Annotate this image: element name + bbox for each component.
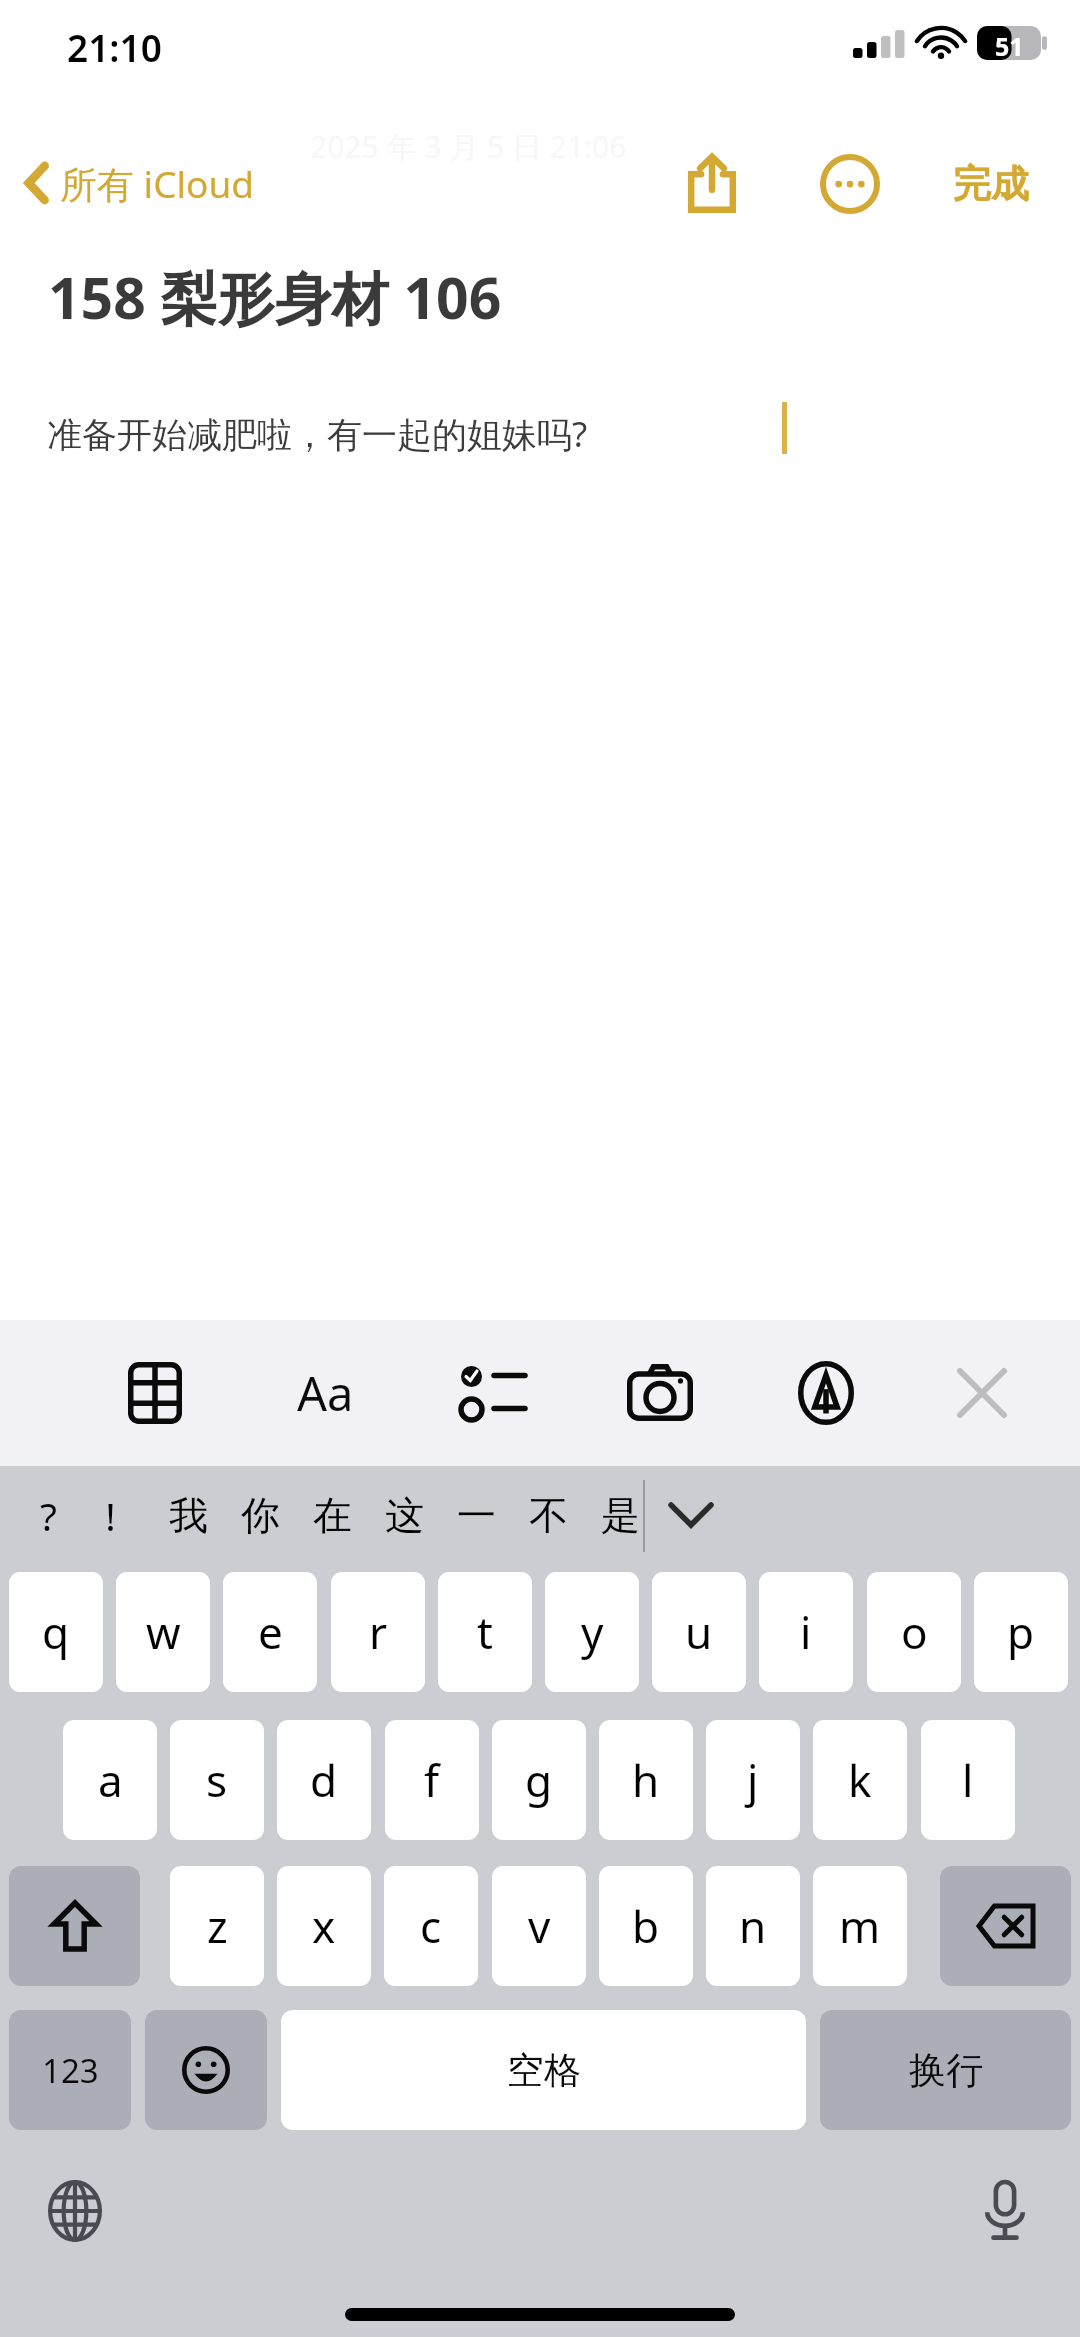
button[interactable]: b [599,1866,693,1986]
staticText: o [901,1602,928,1662]
button[interactable]: Shift [9,1866,140,1986]
button[interactable]: l [921,1720,1015,1840]
button[interactable]: v [492,1866,586,1986]
button[interactable]: d [277,1720,371,1840]
button[interactable]: u [652,1572,746,1692]
staticText: i [800,1602,812,1662]
button[interactable]: 所有 iCloud [18,140,263,226]
button[interactable]: Dictate [950,2156,1060,2266]
staticText: 准备开始减肥啦，有一起的姐妹吗? [47,410,588,458]
button[interactable]: Format text [265,1340,385,1446]
staticText: g [525,1750,553,1810]
staticText: 一 [457,1491,496,1540]
button[interactable]: y [545,1572,639,1692]
staticText: k [848,1750,872,1810]
staticText: 不 [529,1491,568,1540]
staticText: ? [40,1489,57,1542]
staticText: d [310,1750,338,1810]
button[interactable]: Camera [600,1340,720,1446]
staticText: r [369,1602,388,1662]
button[interactable]: Checklist [432,1340,552,1446]
button[interactable]: t [438,1572,532,1692]
staticText: f [424,1750,440,1810]
button[interactable]: Expand candidates [636,1466,746,1564]
staticText: ! [105,1489,116,1542]
button[interactable]: m [813,1866,907,1986]
staticText: 158 梨形身材 106 [48,258,502,336]
staticText: 这 [385,1491,424,1540]
staticText: j [747,1750,759,1810]
staticText: y [581,1602,604,1662]
staticText: h [632,1750,660,1810]
button[interactable]: 是 [584,1466,656,1564]
staticText: 空格 [507,2047,581,2094]
button[interactable]: 我 [152,1466,224,1564]
staticText: 123 [42,2048,99,2093]
staticText: l [962,1750,974,1810]
button[interactable]: Emoji [145,2010,267,2130]
staticText: m [839,1896,881,1956]
button[interactable]: i [759,1572,853,1692]
button[interactable]: r [331,1572,425,1692]
button[interactable]: 一 [440,1466,512,1564]
staticText: Aa [297,1361,354,1425]
button[interactable]: 不 [512,1466,584,1564]
button[interactable]: z [170,1866,264,1986]
button[interactable]: 这 [368,1466,440,1564]
staticText: t [477,1602,493,1662]
button[interactable]: q [9,1572,103,1692]
button[interactable]: 123 [9,2010,131,2130]
staticText: s [206,1750,228,1810]
button[interactable]: 完成 [924,142,1058,226]
button[interactable]: k [813,1720,907,1840]
button[interactable]: More options [800,142,900,226]
staticText: 我 [169,1491,208,1540]
button[interactable]: f [385,1720,479,1840]
staticText: 完成 [953,160,1029,208]
button[interactable]: o [867,1572,961,1692]
button[interactable]: s [170,1720,264,1840]
button[interactable]: Backspace [940,1866,1071,1986]
button[interactable]: Share [662,142,762,226]
button[interactable]: w [116,1572,210,1692]
button[interactable]: c [384,1866,478,1986]
staticText: 在 [313,1491,352,1540]
button[interactable]: e [223,1572,317,1692]
button[interactable]: ! [74,1466,146,1564]
staticText: e [258,1602,283,1662]
staticText: 换行 [909,2047,983,2094]
button[interactable]: p [974,1572,1068,1692]
button[interactable]: Insert table [95,1340,215,1446]
staticText: 你 [241,1491,280,1540]
staticText: 是 [601,1491,640,1540]
staticText: a [98,1750,123,1810]
staticText: 21:10 [67,22,162,72]
button[interactable]: Close keyboard [922,1340,1042,1446]
staticText: 所有 iCloud [60,158,255,209]
staticText: z [207,1896,228,1956]
button[interactable]: Switch keyboard [20,2156,130,2266]
staticText: 51 [995,29,1024,63]
button[interactable]: 在 [296,1466,368,1564]
staticText: v [528,1896,551,1956]
staticText: b [632,1896,660,1956]
staticText: w [146,1602,181,1662]
button[interactable]: n [706,1866,800,1986]
button[interactable]: 换行 [820,2010,1071,2130]
staticText: x [312,1896,336,1956]
button[interactable]: j [706,1720,800,1840]
staticText: q [42,1602,70,1662]
button[interactable]: Markup [766,1340,886,1446]
button[interactable]: x [277,1866,371,1986]
staticText: n [739,1896,767,1956]
staticText: c [420,1896,442,1956]
button[interactable]: 空格 [281,2010,806,2130]
button[interactable]: ? [12,1466,84,1564]
staticText: p [1007,1602,1035,1662]
button[interactable]: 你 [224,1466,296,1564]
button[interactable]: h [599,1720,693,1840]
button[interactable]: a [63,1720,157,1840]
button[interactable]: g [492,1720,586,1840]
staticText: u [685,1602,713,1662]
